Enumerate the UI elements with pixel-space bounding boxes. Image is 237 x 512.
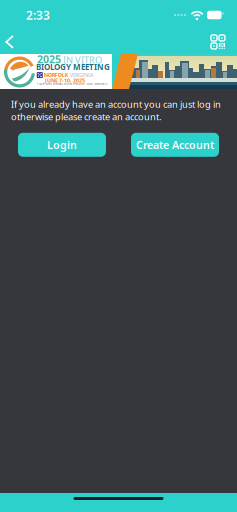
staticText: 2:33 [26, 7, 50, 23]
button[interactable]: Scan QR code [202, 30, 237, 54]
staticText: PLANT AND ANIMAL BIOTECHNOLOGY AND GENOM… [37, 82, 107, 85]
staticText: JUNE 7-10, 2025 [45, 77, 85, 84]
button[interactable]: Back [0, 30, 24, 54]
button[interactable]: Create Account [131, 133, 219, 157]
staticText: If you already have an account you can j… [11, 98, 221, 123]
staticText: BIOLOGY MEETING [36, 61, 110, 72]
staticText: IN VITRO [63, 54, 102, 66]
staticText: VIRGINIA [70, 71, 93, 79]
staticText: NORFOLK [44, 71, 69, 79]
staticText: 2025 [37, 52, 61, 66]
staticText: Create Account [136, 138, 214, 152]
button[interactable]: Login [18, 133, 106, 157]
staticText: Login [47, 138, 77, 152]
